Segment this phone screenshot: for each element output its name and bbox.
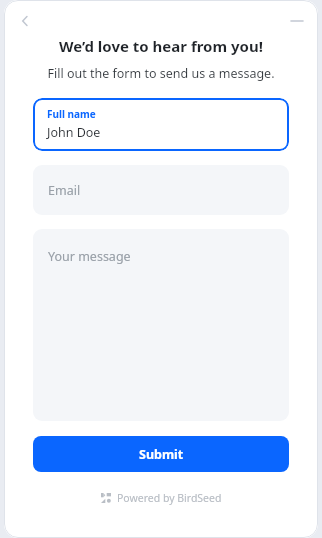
staticText: Email xyxy=(48,182,81,199)
button[interactable]: Full name xyxy=(33,98,289,151)
staticText: Submit xyxy=(139,446,184,463)
staticText: Full name xyxy=(47,107,96,121)
staticText: Your message xyxy=(48,248,131,265)
button[interactable]: Your message xyxy=(33,229,289,421)
button[interactable]: Email xyxy=(33,165,289,215)
staticText: Powered by BirdSeed xyxy=(117,491,222,505)
button[interactable]: Minimize xyxy=(284,8,310,34)
staticText: John Doe xyxy=(47,124,101,141)
button[interactable]: Submit xyxy=(33,436,289,472)
button[interactable]: Powered by BirdSeed xyxy=(97,489,226,507)
staticText: We’d love to hear from you! xyxy=(59,36,263,56)
staticText: Fill out the form to send us a message. xyxy=(47,65,275,82)
button[interactable]: Back xyxy=(12,8,38,34)
